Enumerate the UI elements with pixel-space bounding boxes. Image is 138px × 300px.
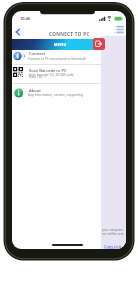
staticText: Scan Barcode to PC [29,68,67,74]
staticText: 10:46 [20,16,31,21]
staticText: Connect to PC via network or bluetooth [28,57,87,61]
staticText: your computer [102,228,123,232]
staticText: About [29,88,41,94]
staticText: Scan barcode 1D, 2D (QR code, [29,73,75,77]
button[interactable] [113,25,125,35]
staticText: nce will be sent [102,232,124,236]
staticText: CONNECT TO PC [49,31,90,37]
button[interactable]: Copy Link [104,244,122,249]
button[interactable]: Connect [12,50,101,65]
staticText: MENU [54,42,67,47]
staticText: Copy Link [104,244,122,249]
staticText: Connect [29,51,46,57]
staticText: Data 128...) [29,75,46,79]
button[interactable]: Scan Barcode to PC [12,65,101,83]
button[interactable] [13,27,22,37]
button[interactable] [93,38,105,50]
staticText: App information, version, supporting [28,93,83,97]
button[interactable]: About [12,83,101,100]
